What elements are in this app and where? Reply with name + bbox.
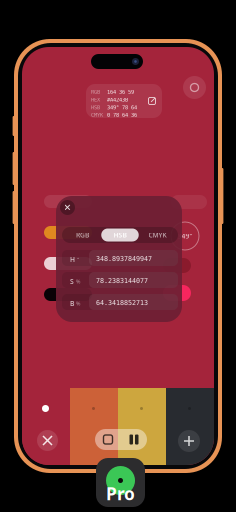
button[interactable]: Colour swatch bbox=[166, 388, 214, 465]
staticText: 348.8937849947 bbox=[96, 255, 152, 263]
staticText: ✕ bbox=[63, 202, 71, 213]
staticText: CMYK bbox=[91, 112, 103, 118]
staticText: % bbox=[76, 278, 80, 285]
staticText: #A4243B bbox=[107, 97, 128, 103]
staticText: RGB bbox=[76, 231, 89, 239]
staticText: % bbox=[76, 300, 80, 307]
staticText: 349° bbox=[177, 232, 192, 240]
staticText: ° bbox=[77, 256, 79, 263]
staticText: S bbox=[70, 277, 74, 286]
button[interactable]: Colour swatch bbox=[70, 388, 118, 465]
staticText: 349° 78 64 bbox=[107, 104, 137, 110]
staticText: 164 36 59 bbox=[107, 89, 134, 95]
staticText: B bbox=[70, 299, 74, 308]
button[interactable]: Copy colour values bbox=[86, 84, 162, 118]
button[interactable]: Colour swatch bbox=[22, 388, 70, 465]
staticText: RGB bbox=[91, 89, 100, 95]
button[interactable]: CMYK bbox=[139, 228, 176, 241]
staticText: HSB bbox=[113, 231, 126, 239]
button[interactable]: Add swatch bbox=[178, 430, 200, 452]
button[interactable]: HSB bbox=[101, 228, 139, 241]
button[interactable]: Colour swatch bbox=[118, 388, 166, 465]
staticText: HEX bbox=[91, 97, 100, 103]
button[interactable]: Close bbox=[60, 200, 75, 215]
staticText: Pro bbox=[106, 482, 135, 505]
button[interactable]: Palette bbox=[121, 429, 147, 450]
staticText: HSB bbox=[91, 104, 100, 110]
button[interactable]: Delete swatch bbox=[37, 430, 58, 451]
button[interactable]: RGB bbox=[64, 228, 101, 241]
staticText: 78.2383144077 bbox=[96, 277, 148, 285]
button[interactable]: Single colour bbox=[95, 429, 121, 450]
staticText: CMYK bbox=[148, 231, 166, 239]
staticText: 0 78 64 36 bbox=[107, 112, 137, 118]
staticText: 64.3418852713 bbox=[96, 299, 148, 307]
button[interactable]: Settings bbox=[183, 76, 206, 99]
staticText: H bbox=[70, 255, 75, 264]
